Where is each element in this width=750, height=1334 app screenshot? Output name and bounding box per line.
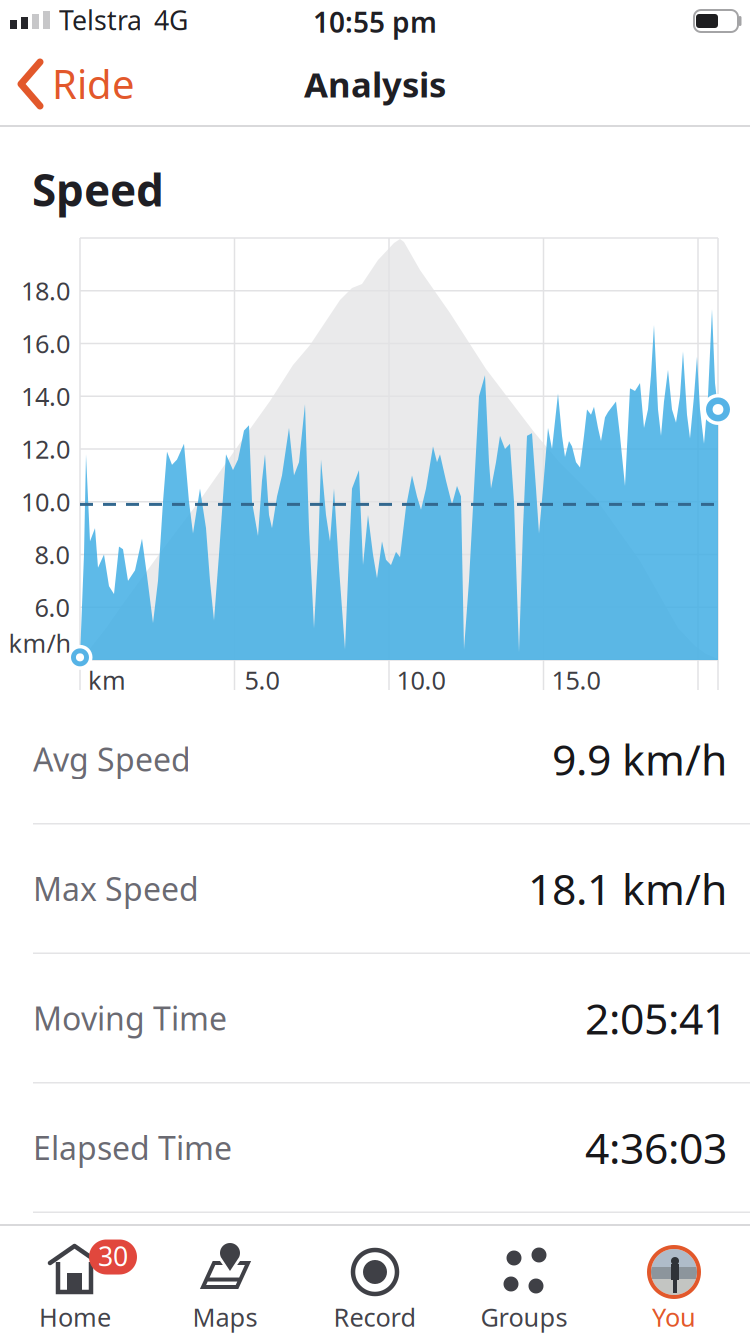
staticText: Ride [52,57,135,110]
button[interactable]: 30 [0,1224,150,1334]
staticText: Record [333,1300,416,1334]
staticText: 6.0 [34,590,69,624]
staticText: Maps [192,1300,257,1334]
staticText: Groups [480,1300,567,1334]
staticText: 9.9 km/h [552,731,727,787]
staticText: 12.0 [21,432,70,466]
staticText: Telstra [59,2,142,38]
staticText: 5.0 [244,663,279,697]
button[interactable]: Groups [449,1224,599,1334]
staticText: Speed [32,160,164,219]
staticText: Max Speed [33,867,199,910]
staticText: 16.0 [21,327,70,360]
button[interactable]: You [599,1224,749,1334]
staticText: Home [39,1300,111,1334]
staticText: Moving Time [33,997,227,1039]
staticText: 30 [98,1238,128,1274]
staticText: km [88,663,126,697]
staticText: 14.0 [21,379,70,413]
staticText: 4:36:03 [585,1119,727,1176]
button[interactable]: Record [300,1224,450,1334]
staticText: 4G [154,2,188,38]
button[interactable]: Ride [0,40,170,127]
staticText: 18.0 [21,274,70,307]
staticText: 18.1 km/h [528,860,727,917]
staticText: Avg Speed [33,738,191,780]
staticText: Elapsed Time [33,1126,232,1169]
staticText: 8.0 [34,538,69,571]
staticText: km/h [8,626,71,660]
staticText: 15.0 [551,663,600,697]
staticText: You [652,1300,696,1334]
staticText: 10.0 [21,485,70,518]
staticText: Analysis [304,61,446,107]
staticText: 2:05:41 [585,990,727,1046]
button[interactable]: Maps [150,1224,300,1334]
staticText: 10:55 pm [313,3,437,41]
staticText: 10.0 [396,663,445,697]
